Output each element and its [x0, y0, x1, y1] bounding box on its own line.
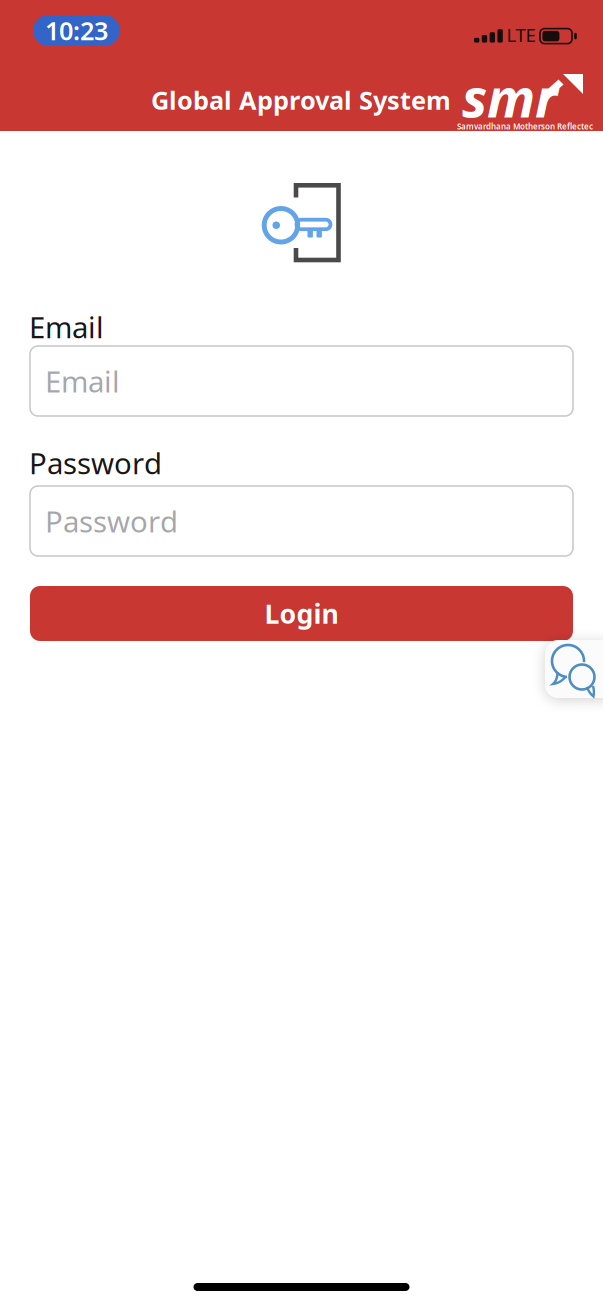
staticText: Password — [29, 443, 162, 482]
staticText: Password — [45, 501, 178, 540]
staticText: Email — [45, 361, 120, 400]
staticText: Email — [29, 307, 104, 346]
staticText: Global Approval System — [151, 83, 451, 117]
staticText: LTE — [506, 22, 535, 47]
staticText: Samvardhana Motherson Reflectec — [457, 121, 593, 132]
button[interactable]: Login — [30, 586, 573, 641]
staticText: smr — [462, 61, 558, 132]
button[interactable] — [545, 640, 603, 698]
staticText: 10:23 — [45, 14, 108, 47]
staticText: Login — [264, 596, 338, 631]
button[interactable]: Password — [30, 486, 573, 556]
button[interactable]: Email — [30, 346, 573, 416]
